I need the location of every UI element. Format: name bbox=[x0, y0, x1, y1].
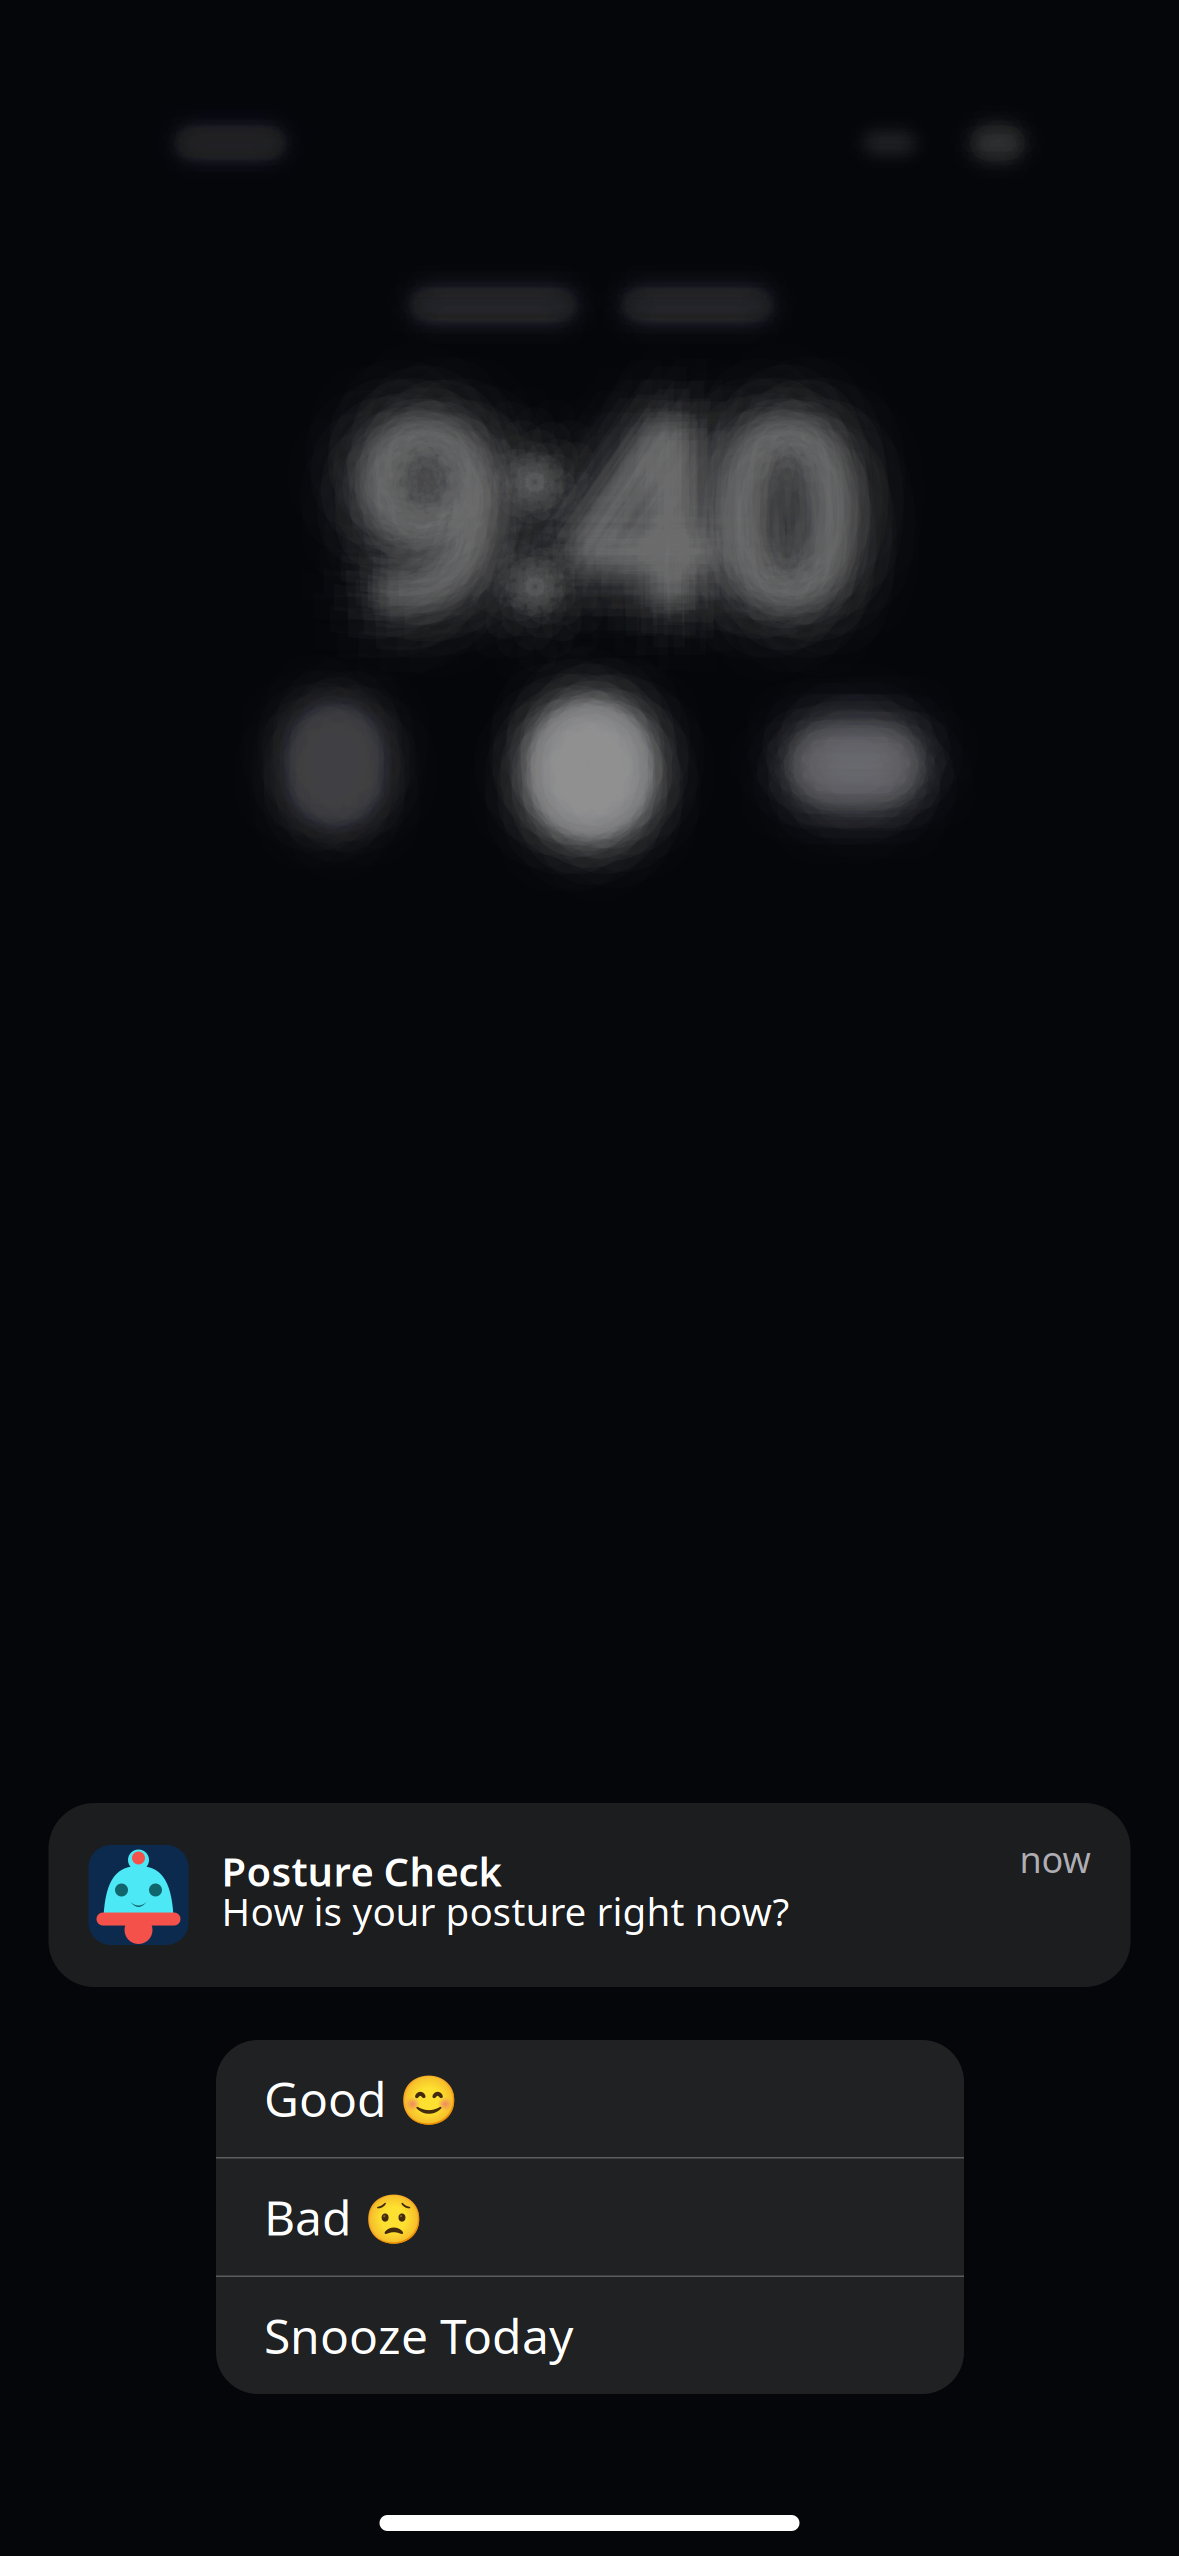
staticText: 9:40 bbox=[403, 364, 908, 701]
staticText: 9:40 bbox=[350, 315, 855, 652]
staticText: How is your posture right now? bbox=[221, 1885, 789, 1937]
staticText: 9:40 bbox=[363, 330, 868, 666]
staticText: 9:40 bbox=[342, 295, 847, 631]
staticText: 9:40 bbox=[420, 396, 925, 733]
staticText: 9:40 bbox=[296, 306, 801, 643]
staticText: 9:40 bbox=[336, 310, 841, 646]
staticText: 9:40 bbox=[372, 296, 877, 632]
staticText: 9:40 bbox=[355, 337, 860, 673]
staticText: 9:40 bbox=[357, 326, 862, 662]
staticText: 9:40 bbox=[420, 345, 925, 682]
staticText: 9:40 bbox=[374, 251, 879, 587]
staticText: 9:40 bbox=[378, 313, 883, 650]
button[interactable]: Good 😊 bbox=[216, 2040, 964, 2157]
staticText: 9:40 bbox=[355, 282, 860, 618]
staticText: 9:40 bbox=[358, 403, 863, 739]
staticText: 9:40 bbox=[314, 259, 819, 595]
button[interactable]: Snooze Today bbox=[216, 2277, 964, 2394]
staticText: 9:40 bbox=[352, 359, 857, 695]
staticText: 9:40 bbox=[363, 344, 868, 680]
staticText: 9:40 bbox=[308, 411, 813, 747]
staticText: 9:40 bbox=[336, 388, 841, 725]
staticText: 9:40 bbox=[318, 313, 823, 649]
staticText: 9:40 bbox=[335, 411, 840, 748]
staticText: 9:40 bbox=[394, 316, 899, 653]
staticText: 9:40 bbox=[339, 352, 844, 688]
staticText: 9:40 bbox=[349, 327, 854, 664]
staticText: 9:40 bbox=[411, 301, 916, 638]
staticText: 9:40 bbox=[387, 407, 892, 743]
button[interactable]: Posture Check bbox=[48, 1803, 1130, 1987]
staticText: 9:40 bbox=[323, 328, 828, 665]
staticText: 9:40 bbox=[390, 295, 895, 631]
staticText: 9:40 bbox=[375, 328, 880, 665]
staticText: 9:40 bbox=[348, 260, 853, 596]
staticText: 9:40 bbox=[382, 356, 887, 692]
staticText: 9:40 bbox=[425, 369, 930, 706]
staticText: 9:40 bbox=[398, 346, 903, 683]
staticText: 9:40 bbox=[325, 351, 830, 687]
staticText: 9:40 bbox=[278, 330, 783, 666]
staticText: 9:40 bbox=[443, 341, 948, 677]
staticText: 9:40 bbox=[301, 327, 806, 664]
staticText: 9:40 bbox=[345, 333, 850, 669]
staticText: 9:40 bbox=[366, 424, 871, 760]
staticText: 9:40 bbox=[301, 282, 806, 619]
staticText: 9:40 bbox=[365, 317, 870, 654]
staticText: 9:40 bbox=[374, 388, 879, 725]
staticText: Bad 😟 bbox=[264, 2185, 424, 2249]
staticText: 9:40 bbox=[429, 317, 934, 653]
staticText: 9:40 bbox=[358, 304, 863, 640]
staticText: 9:40 bbox=[307, 364, 812, 701]
staticText: 9:40 bbox=[409, 327, 914, 664]
staticText: 9:40 bbox=[353, 381, 858, 717]
staticText: 9:40 bbox=[315, 389, 820, 725]
staticText: 9:40 bbox=[367, 355, 872, 692]
staticText: 9:40 bbox=[363, 369, 868, 705]
staticText: 9:40 bbox=[292, 381, 797, 717]
staticText: 9:40 bbox=[357, 348, 862, 684]
staticText: 9:40 bbox=[366, 337, 871, 673]
staticText: 9:40 bbox=[311, 342, 816, 679]
staticText: now bbox=[1019, 1835, 1090, 1883]
button[interactable]: Bad 😟 bbox=[216, 2158, 964, 2275]
staticText: 9:40 bbox=[349, 346, 854, 683]
staticText: Snooze Today bbox=[264, 2304, 573, 2367]
staticText: 9:40 bbox=[341, 367, 846, 703]
staticText: 9:40 bbox=[291, 351, 796, 687]
staticText: 9:40 bbox=[333, 338, 838, 674]
staticText: 9:40 bbox=[271, 363, 776, 700]
staticText: Posture Check bbox=[221, 1844, 502, 1897]
staticText: 9:40 bbox=[330, 276, 835, 612]
staticText: 9:40 bbox=[400, 385, 905, 722]
staticText: 9:40 bbox=[375, 274, 880, 610]
staticText: 9:40 bbox=[388, 334, 893, 670]
staticText: 9:40 bbox=[320, 295, 825, 631]
staticText: Good 😊 bbox=[264, 2067, 459, 2130]
staticText: 9:40 bbox=[376, 343, 881, 680]
staticText: 9:40 bbox=[337, 323, 842, 660]
staticText: 9:40 bbox=[399, 274, 904, 610]
staticText: 9:40 bbox=[382, 372, 887, 708]
staticText: 9:40 bbox=[325, 369, 830, 706]
staticText: 9:40 bbox=[425, 283, 930, 620]
staticText: 9:40 bbox=[345, 341, 850, 677]
